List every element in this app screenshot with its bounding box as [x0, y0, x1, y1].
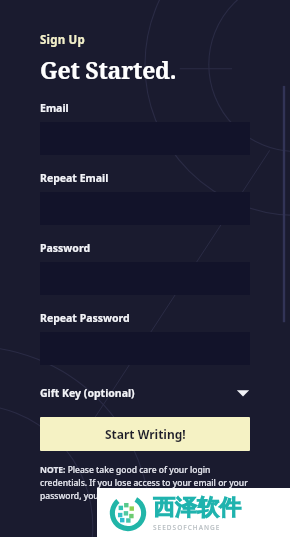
- staticText: Email: [40, 101, 69, 115]
- button[interactable]: Gift Key (optional): [40, 381, 250, 405]
- staticText: SEEDSOFCHANGE: [153, 523, 221, 532]
- staticText: Sign Up: [40, 32, 85, 48]
- staticText: Repeat Password: [40, 311, 130, 325]
- staticText: 西泽软件: [153, 494, 241, 522]
- staticText: Repeat Email: [40, 171, 109, 185]
- staticText: Password: [40, 241, 91, 255]
- staticText: Get Started.: [40, 54, 177, 85]
- staticText: NOTE: Please take good care of your logi…: [40, 464, 250, 502]
- button[interactable]: Start Writing!: [40, 417, 250, 451]
- staticText: Start Writing!: [105, 426, 186, 442]
- staticText: Gift Key (optional): [40, 386, 135, 400]
